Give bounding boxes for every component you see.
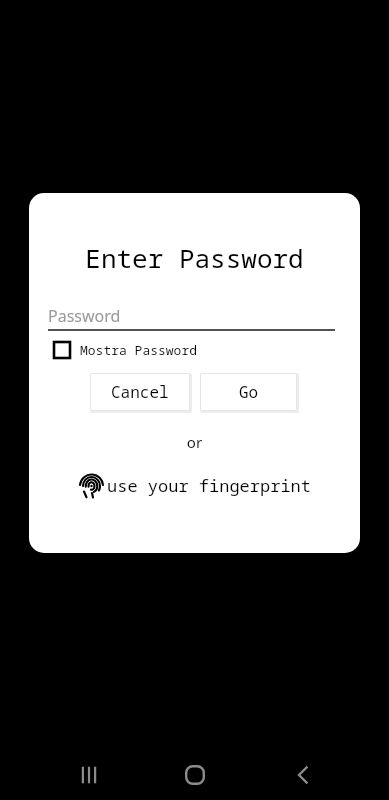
staticText: Password	[48, 305, 121, 327]
button[interactable]: Go	[200, 373, 297, 411]
staticText: Cancel	[111, 381, 169, 403]
staticText: or	[29, 432, 360, 452]
staticText: Mostra Password	[80, 341, 198, 359]
staticText: use your fingerprint	[107, 474, 311, 497]
button[interactable]: Password	[48, 301, 335, 331]
button[interactable]: Cancel	[90, 373, 190, 411]
staticText: Go	[239, 381, 259, 403]
button[interactable]: Back	[285, 757, 321, 793]
button[interactable]: Recents	[71, 757, 107, 793]
other: Use your fingerprint	[79, 473, 104, 498]
button[interactable]: Use your fingerprint	[79, 473, 311, 498]
button[interactable]: Mostra Password	[53, 337, 198, 363]
staticText: Enter Password	[29, 240, 360, 275]
button[interactable]: Home	[176, 756, 214, 794]
